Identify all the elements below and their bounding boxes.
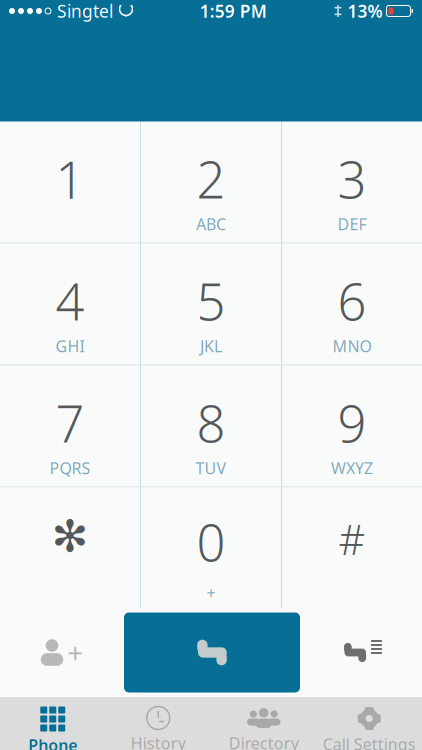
staticText: TUV bbox=[195, 457, 226, 479]
button[interactable]: History bbox=[105, 697, 211, 750]
staticText: 2 bbox=[196, 145, 225, 212]
staticText: JKL bbox=[200, 335, 222, 357]
staticText: 4 bbox=[55, 267, 84, 334]
button[interactable]: 0 bbox=[141, 487, 281, 608]
staticText: # bbox=[338, 511, 365, 566]
staticText: Singtel bbox=[57, 0, 113, 22]
button[interactable]: 6 bbox=[282, 243, 422, 364]
staticText: PQRS bbox=[49, 457, 90, 479]
staticText: + bbox=[67, 634, 83, 671]
staticText: 6 bbox=[337, 267, 366, 334]
staticText: 0 bbox=[196, 508, 225, 575]
staticText: 1:59 PM bbox=[200, 0, 267, 22]
staticText: History bbox=[131, 732, 186, 750]
button[interactable]: 3 bbox=[282, 121, 422, 242]
staticText: 3 bbox=[337, 145, 366, 212]
staticText: MNO bbox=[332, 335, 371, 357]
button[interactable]: 8 bbox=[141, 365, 281, 486]
button[interactable]: 9 bbox=[282, 365, 422, 486]
staticText: Call Settings bbox=[323, 733, 416, 750]
staticText: GHI bbox=[55, 335, 84, 357]
staticText: 9 bbox=[337, 389, 366, 456]
staticText: ABC bbox=[196, 213, 226, 235]
button[interactable]: 5 bbox=[141, 243, 281, 364]
staticText: 1 bbox=[55, 145, 84, 213]
button[interactable]: Add Contact bbox=[0, 608, 124, 697]
staticText: + bbox=[206, 582, 215, 604]
staticText: 8 bbox=[196, 389, 225, 456]
button[interactable]: 1 bbox=[0, 121, 140, 242]
button[interactable]: 2 bbox=[141, 121, 281, 242]
staticText: 13% bbox=[347, 0, 382, 22]
staticText: ✻ bbox=[51, 511, 88, 561]
button[interactable]: 4 bbox=[0, 243, 140, 364]
staticText: Phone bbox=[28, 734, 77, 750]
button[interactable]: Call History bbox=[300, 608, 422, 697]
staticText: WXYZ bbox=[331, 457, 373, 479]
button[interactable]: Phone bbox=[0, 697, 105, 750]
button[interactable]: Directory bbox=[211, 697, 316, 750]
button[interactable]: ✻ bbox=[0, 487, 140, 608]
button[interactable]: # bbox=[282, 487, 422, 608]
staticText: DEF bbox=[337, 213, 366, 235]
button[interactable]: Call bbox=[124, 612, 300, 692]
staticText: 7 bbox=[55, 389, 84, 456]
staticText: 5 bbox=[196, 267, 225, 334]
button[interactable]: 7 bbox=[0, 365, 140, 486]
staticText: Directory bbox=[229, 732, 299, 750]
button[interactable]: Call Settings bbox=[316, 697, 422, 750]
